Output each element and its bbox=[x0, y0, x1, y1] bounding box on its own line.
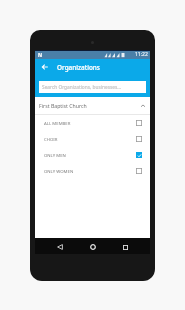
button[interactable]: ALL MEMBER bbox=[35, 115, 150, 131]
button[interactable]: Back bbox=[53, 240, 67, 254]
staticText: N bbox=[38, 52, 42, 57]
button[interactable]: First Baptist Church bbox=[35, 97, 150, 114]
staticText: ONLY MEN bbox=[44, 152, 66, 158]
button[interactable]: Home bbox=[86, 240, 100, 254]
button[interactable]: Recents bbox=[118, 240, 132, 254]
staticText: First Baptist Church bbox=[39, 102, 87, 109]
button[interactable]: ONLY MEN bbox=[35, 147, 150, 163]
button[interactable]: Back bbox=[39, 61, 51, 73]
staticText: ONLY WOMEN bbox=[44, 168, 74, 174]
staticText: Organizations bbox=[57, 63, 100, 72]
button[interactable]: CHOIR bbox=[35, 131, 150, 147]
button[interactable]: Search Organizations, businesses... bbox=[39, 81, 146, 93]
staticText: 11:22 bbox=[135, 51, 148, 58]
staticText: ALL MEMBER bbox=[44, 120, 71, 126]
staticText: Search Organizations, businesses... bbox=[42, 84, 122, 91]
staticText: CHOIR bbox=[44, 136, 58, 142]
button[interactable]: ONLY WOMEN bbox=[35, 163, 150, 179]
